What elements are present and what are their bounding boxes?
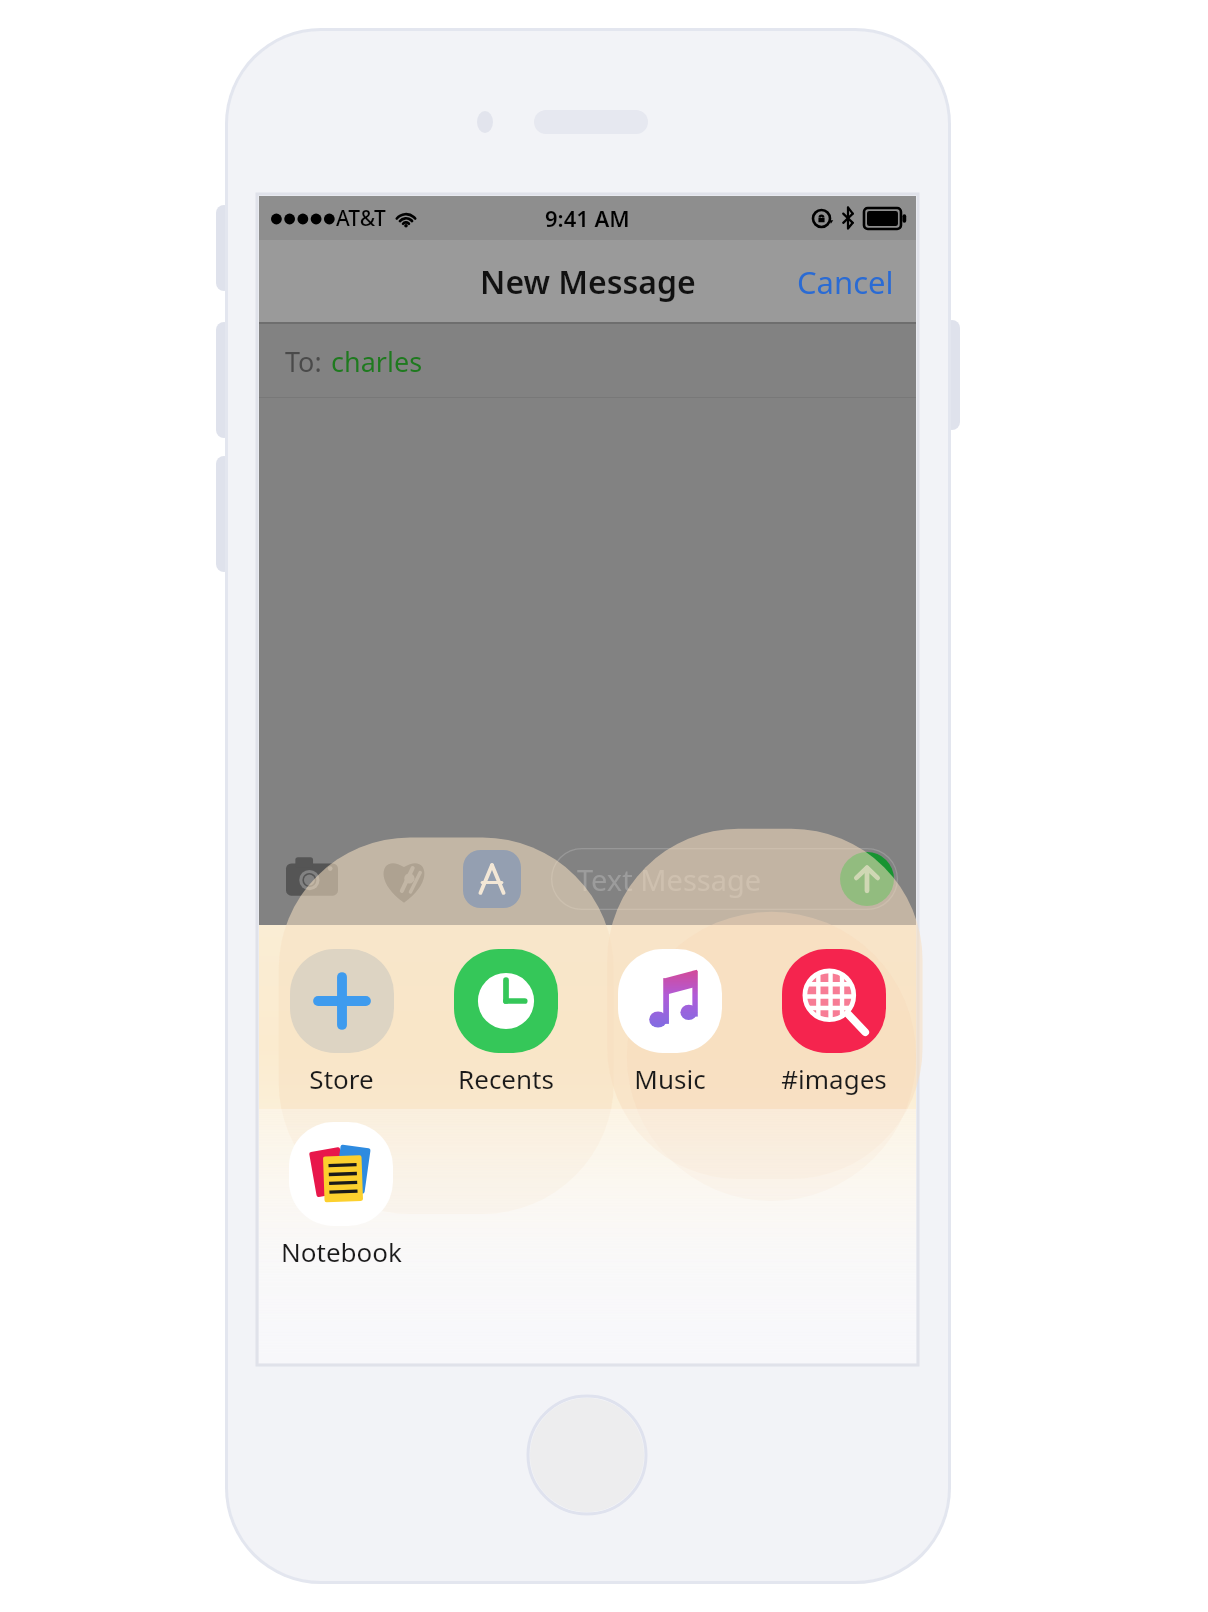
button[interactable]: Send <box>840 852 894 906</box>
staticText: To: <box>285 343 322 380</box>
button[interactable]: App Store <box>461 848 523 910</box>
button[interactable]: Notebook <box>259 1118 423 1273</box>
button[interactable]: Cancel <box>775 247 916 317</box>
button[interactable]: Digital Touch <box>373 848 435 910</box>
button[interactable]: To: <box>259 324 916 398</box>
button[interactable]: #images <box>752 945 916 1100</box>
staticText: charles <box>331 343 423 380</box>
button[interactable]: Text Message <box>551 848 898 910</box>
staticText: New Message <box>480 260 696 304</box>
staticText: Store <box>309 1061 374 1096</box>
staticText: AT&T <box>336 204 386 233</box>
staticText: 9:41 AM <box>545 203 630 233</box>
button[interactable]: Recents <box>424 945 588 1100</box>
staticText: Text Message <box>577 860 762 899</box>
staticText: Recents <box>458 1061 554 1096</box>
staticText: Notebook <box>281 1234 402 1269</box>
staticText: Music <box>634 1061 706 1096</box>
staticText: Cancel <box>797 261 894 303</box>
button[interactable]: Camera <box>281 848 343 910</box>
button[interactable]: Music <box>588 945 752 1100</box>
staticText: #images <box>781 1061 887 1096</box>
button[interactable]: Store <box>259 945 424 1100</box>
